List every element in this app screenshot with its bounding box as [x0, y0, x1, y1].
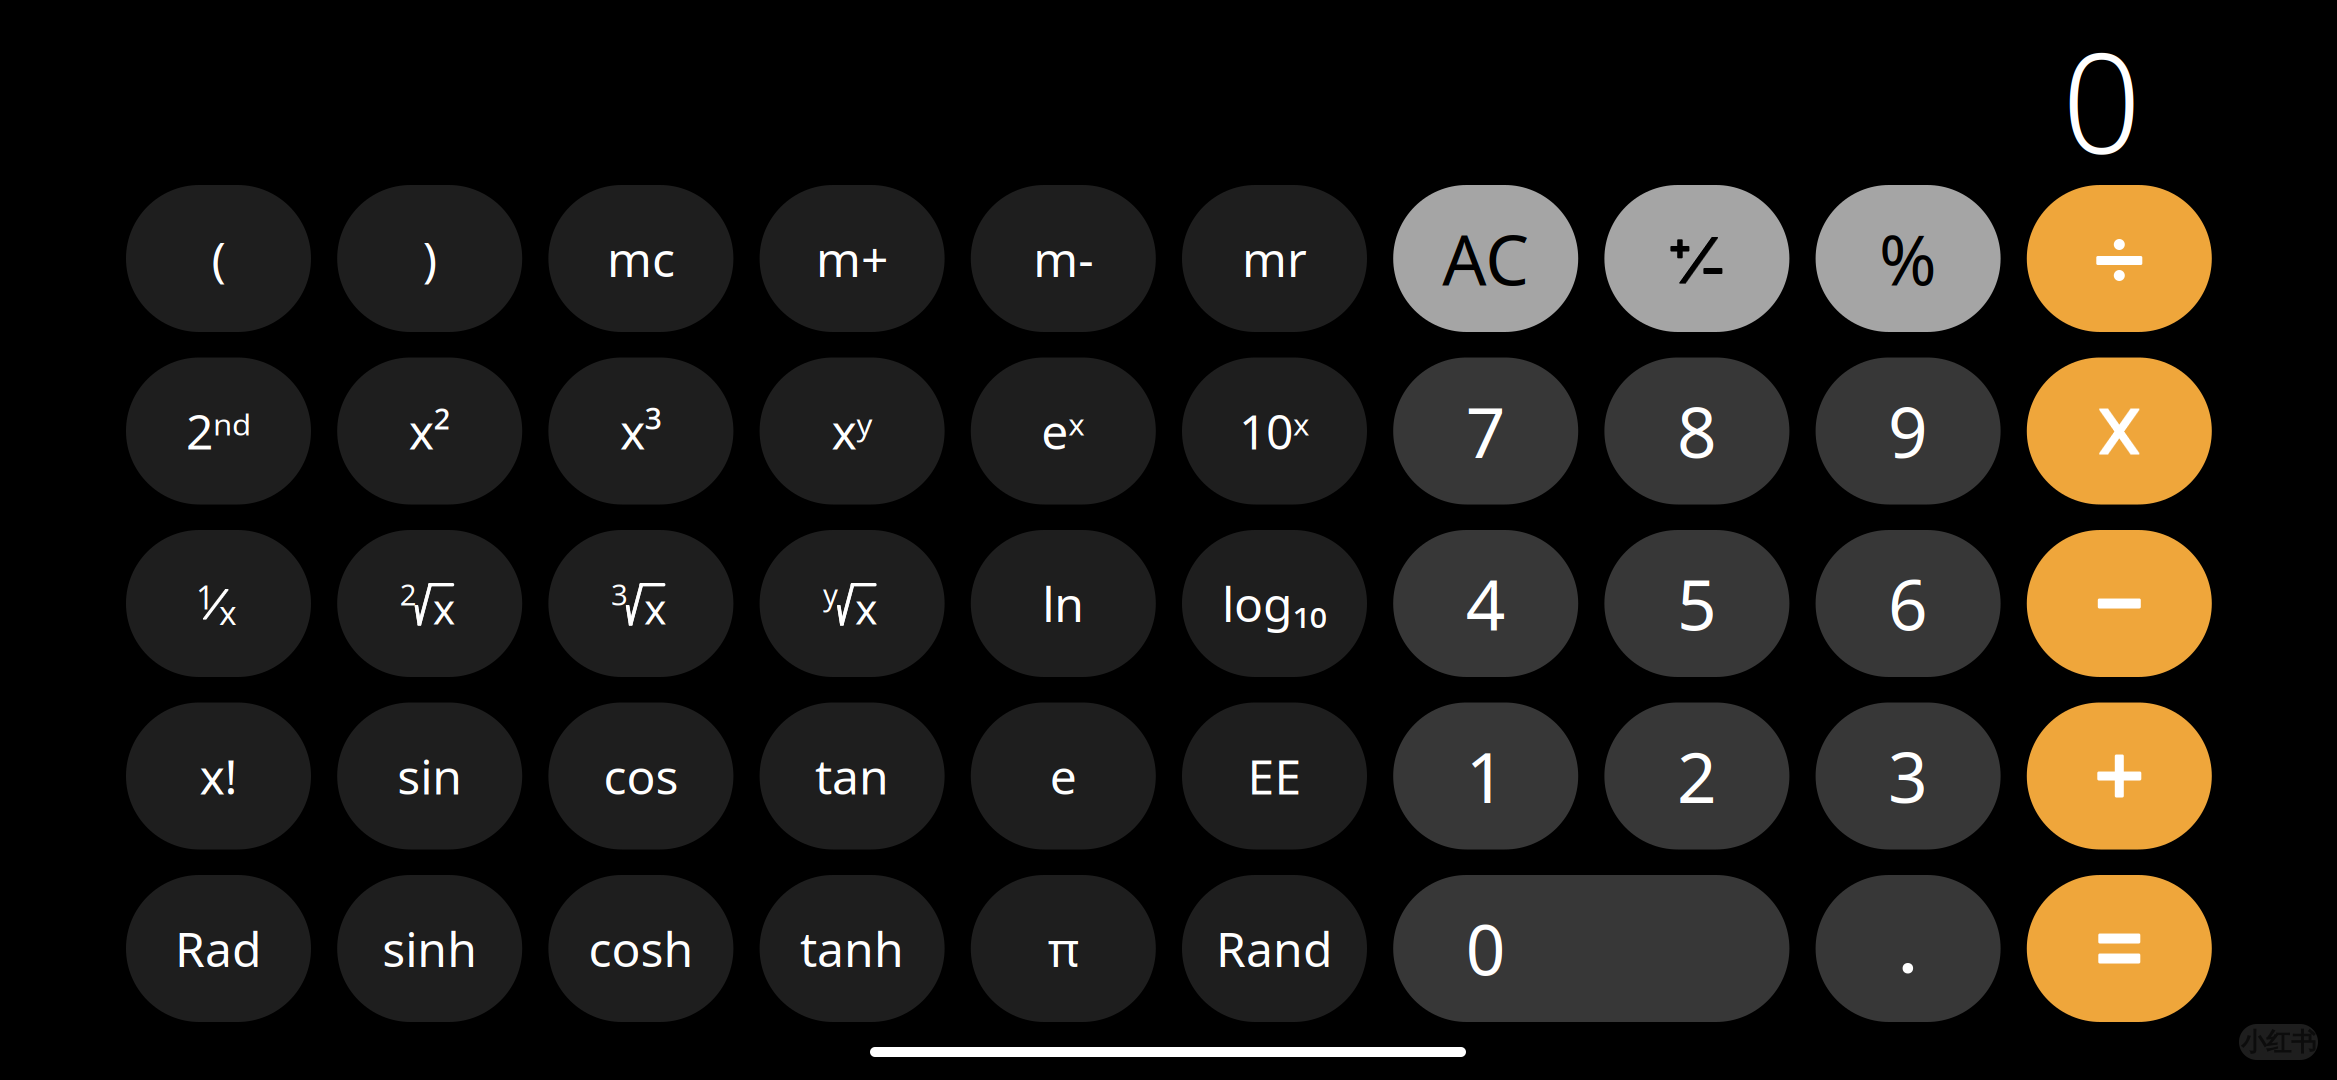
staticText: tanh: [800, 917, 904, 980]
staticText: 2: [400, 574, 417, 613]
staticText: e: [1050, 744, 1077, 808]
staticText: m-: [1033, 227, 1093, 290]
button[interactable]: tanh: [760, 875, 945, 1022]
button[interactable]: ln: [971, 530, 1156, 677]
staticText: x!: [199, 744, 237, 808]
staticText: cosh: [588, 917, 693, 980]
button[interactable]: x²: [337, 357, 522, 504]
button[interactable]: ): [337, 185, 522, 332]
staticText: log₁₀: [1222, 572, 1327, 635]
staticText: tan: [815, 744, 889, 808]
staticText: mc: [607, 227, 675, 290]
button[interactable]: (: [126, 185, 311, 332]
staticText: 2: [1677, 730, 1717, 822]
button[interactable]: 1: [1393, 702, 1578, 849]
button[interactable]: Decimal point: [1816, 875, 2001, 1022]
button[interactable]: plus minus: [1604, 185, 1789, 332]
button[interactable]: mc: [548, 185, 733, 332]
staticText: (: [211, 227, 225, 290]
button[interactable]: y-th root of x: [760, 530, 945, 677]
button[interactable]: 8: [1604, 357, 1789, 504]
staticText: ): [423, 227, 437, 290]
staticText: AC: [1442, 212, 1529, 305]
staticText: 8: [1677, 385, 1717, 477]
button[interactable]: π: [971, 875, 1156, 1022]
button[interactable]: 2ⁿᵈ: [126, 357, 311, 504]
button[interactable]: xʸ: [760, 357, 945, 504]
staticText: x: [644, 580, 667, 636]
staticText: x: [433, 580, 456, 636]
button[interactable]: Plus: [2027, 702, 2212, 849]
button[interactable]: Equals: [2027, 875, 2212, 1022]
staticText: ln: [1042, 572, 1084, 635]
button[interactable]: log₁₀: [1182, 530, 1367, 677]
staticText: 0: [2062, 8, 2141, 192]
button[interactable]: sin: [337, 702, 522, 849]
staticText: x²: [409, 399, 451, 463]
button[interactable]: Minus: [2027, 530, 2212, 677]
button[interactable]: tan: [760, 702, 945, 849]
staticText: 0: [1466, 902, 1506, 995]
button[interactable]: e: [971, 702, 1156, 849]
button[interactable]: AC: [1393, 185, 1578, 332]
staticText: 1: [1466, 730, 1506, 822]
button[interactable]: Rand: [1182, 875, 1367, 1022]
button[interactable]: m-: [971, 185, 1156, 332]
button[interactable]: 3 root of x: [548, 530, 733, 677]
staticText: m+: [816, 227, 888, 290]
staticText: sin: [397, 744, 462, 808]
button[interactable]: sinh: [337, 875, 522, 1022]
staticText: xʸ: [832, 399, 873, 463]
staticText: Rad: [175, 917, 262, 980]
button[interactable]: cos: [548, 702, 733, 849]
button[interactable]: 4: [1393, 530, 1578, 677]
staticText: y: [823, 574, 838, 613]
button[interactable]: Rad: [126, 875, 311, 1022]
button[interactable]: Divide: [2027, 185, 2212, 332]
button[interactable]: 10ˣ: [1182, 357, 1367, 504]
staticText: cos: [603, 744, 678, 808]
staticText: 9: [1888, 385, 1928, 477]
button[interactable]: one over x: [126, 530, 311, 677]
staticText: π: [1048, 917, 1079, 980]
button[interactable]: 6: [1816, 530, 2001, 677]
button[interactable]: 7: [1393, 357, 1578, 504]
button[interactable]: x!: [126, 702, 311, 849]
button[interactable]: EE: [1182, 702, 1367, 849]
staticText: eˣ: [1041, 399, 1085, 463]
staticText: 3: [611, 574, 628, 613]
staticText: 4: [1466, 557, 1506, 650]
button[interactable]: 3: [1816, 702, 2001, 849]
staticText: Rand: [1216, 917, 1333, 980]
button[interactable]: x³: [548, 357, 733, 504]
button[interactable]: 0: [1393, 875, 1789, 1022]
staticText: EE: [1247, 744, 1301, 808]
staticText: mr: [1242, 227, 1307, 290]
button[interactable]: eˣ: [971, 357, 1156, 504]
button[interactable]: 5: [1604, 530, 1789, 677]
staticText: 6: [1888, 557, 1928, 650]
button[interactable]: Multiply: [2027, 357, 2212, 504]
staticText: 小红书: [2241, 1026, 2316, 1057]
staticText: 3: [1888, 730, 1928, 822]
staticText: sinh: [382, 917, 477, 980]
button[interactable]: 2 root of x: [337, 530, 522, 677]
button[interactable]: 9: [1816, 357, 2001, 504]
button[interactable]: 2: [1604, 702, 1789, 849]
button[interactable]: %: [1816, 185, 2001, 332]
staticText: x³: [620, 399, 662, 463]
staticText: x: [855, 580, 878, 636]
staticText: 2ⁿᵈ: [186, 399, 251, 463]
staticText: %: [1879, 212, 1937, 305]
button[interactable]: m+: [760, 185, 945, 332]
staticText: 1: [196, 576, 214, 618]
staticText: 10ˣ: [1239, 399, 1310, 463]
button[interactable]: mr: [1182, 185, 1367, 332]
staticText: 7: [1466, 385, 1506, 477]
staticText: x: [219, 590, 237, 634]
button[interactable]: cosh: [548, 875, 733, 1022]
staticText: 5: [1677, 557, 1717, 650]
